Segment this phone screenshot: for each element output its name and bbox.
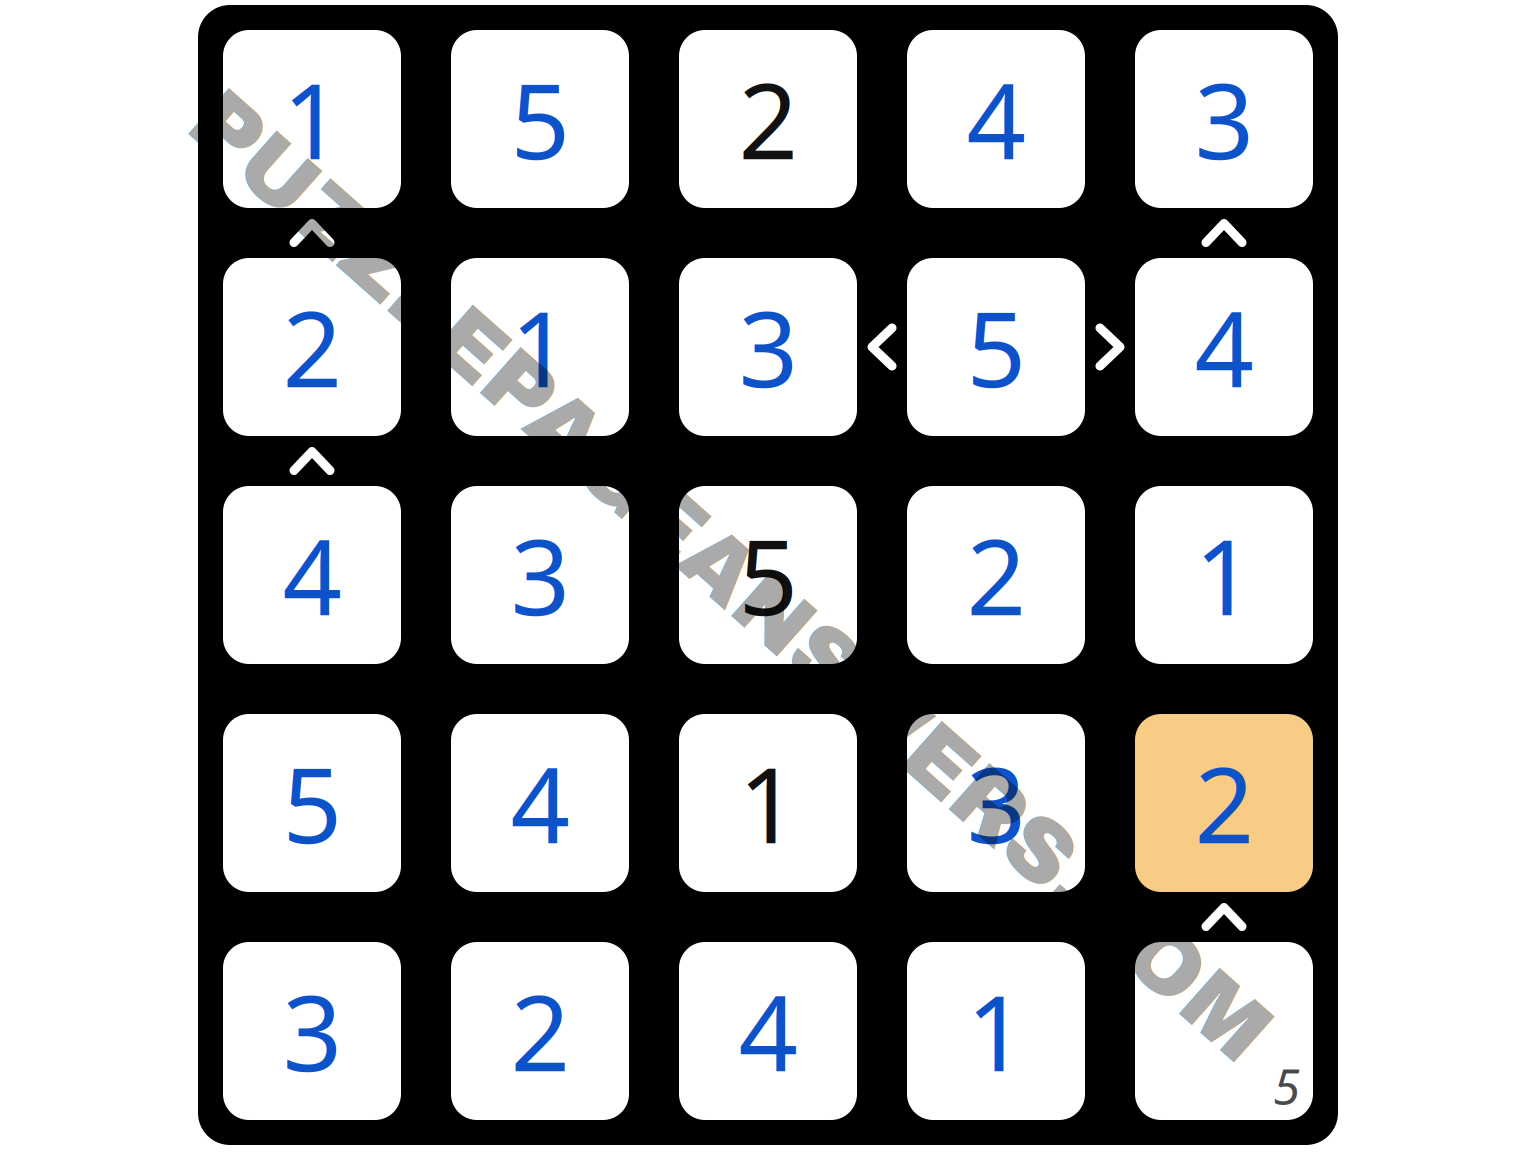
staticText: 5 — [738, 506, 797, 644]
button[interactable]: 4 — [223, 486, 401, 664]
button[interactable]: 3 — [1135, 30, 1313, 208]
staticText: 5 — [966, 278, 1025, 416]
button[interactable]: 1 — [1135, 486, 1313, 664]
staticText: 3 — [738, 278, 797, 416]
button[interactable]: 1 — [223, 30, 401, 208]
staticText: 4 — [738, 962, 797, 1100]
staticText: 5 — [510, 50, 569, 188]
staticText: 4 — [1194, 278, 1253, 416]
button[interactable]: 4 — [451, 714, 629, 892]
button[interactable]: 1 — [907, 942, 1085, 1120]
staticText: 5 — [282, 734, 341, 872]
staticText: 1 — [282, 50, 341, 188]
button[interactable]: 2 — [679, 30, 857, 208]
button[interactable]: 2 — [223, 258, 401, 436]
button[interactable]: 5 — [679, 486, 857, 664]
staticText: 4 — [510, 734, 569, 872]
staticText: 1 — [510, 278, 569, 416]
button[interactable]: 4 — [907, 30, 1085, 208]
button[interactable]: 4 — [679, 942, 857, 1120]
button[interactable]: 3 — [223, 942, 401, 1120]
staticText: 5 — [1273, 1052, 1300, 1118]
button[interactable]: 2 — [451, 942, 629, 1120]
button[interactable]: 5 — [223, 714, 401, 892]
staticText: 2 — [510, 962, 569, 1100]
button[interactable]: 5 — [451, 30, 629, 208]
staticText: 2 — [1194, 734, 1253, 872]
staticText: 1 — [1194, 506, 1253, 644]
button[interactable]: 3 — [679, 258, 857, 436]
staticText: 2 — [282, 278, 341, 416]
button[interactable]: 2 — [907, 486, 1085, 664]
staticText: 2 — [738, 50, 797, 188]
staticText: 3 — [1194, 50, 1253, 188]
staticText: 4 — [966, 50, 1025, 188]
staticText: 1 — [966, 962, 1025, 1100]
staticText: 4 — [282, 506, 341, 644]
staticText: PUZZLEPAGEANSWERS.COM — [25, 527, 1437, 625]
staticText: 2 — [966, 506, 1025, 644]
button[interactable]: 5 — [1135, 942, 1313, 1120]
staticText: 3 — [282, 962, 341, 1100]
button[interactable]: 1 — [451, 258, 629, 436]
staticText: 1 — [738, 734, 797, 872]
staticText: 3 — [510, 506, 569, 644]
button[interactable]: 1 — [679, 714, 857, 892]
button[interactable]: 2 — [1135, 714, 1313, 892]
button[interactable]: 4 — [1135, 258, 1313, 436]
button[interactable]: 5 — [907, 258, 1085, 436]
staticText: 3 — [966, 734, 1025, 872]
button[interactable]: 3 — [451, 486, 629, 664]
button[interactable]: 3 — [907, 714, 1085, 892]
